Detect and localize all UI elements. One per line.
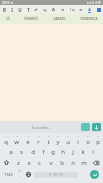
- button[interactable]: 2: [11, 135, 22, 146]
- button[interactable]: Space: [34, 172, 78, 178]
- staticText: n: [71, 159, 75, 167]
- button[interactable]: m: [78, 157, 89, 168]
- staticText: A: [88, 7, 91, 12]
- button[interactable]: U: [16, 5, 24, 14]
- staticText: l: [92, 148, 94, 156]
- button[interactable]: Comma: [15, 168, 23, 181]
- button[interactable]: c: [34, 157, 45, 168]
- staticText: v: [49, 159, 53, 167]
- button[interactable]: VENERDÌ: [16, 14, 45, 24]
- button[interactable]: I: [8, 5, 16, 14]
- button[interactable]: 6: [53, 135, 63, 146]
- button[interactable]: Send: [92, 123, 101, 131]
- button[interactable]: f: [38, 146, 48, 157]
- staticText: u: [66, 138, 70, 146]
- button[interactable]: 9: [83, 135, 93, 146]
- button[interactable]: DÌ: [0, 14, 16, 24]
- staticText: In ascolto...: [32, 125, 51, 130]
- button[interactable]: 7: [63, 135, 73, 146]
- staticText: IT • EN • DE: [49, 173, 63, 177]
- button[interactable]: v: [45, 157, 56, 168]
- button[interactable]: s: [16, 146, 27, 157]
- staticText: 2: [16, 135, 18, 138]
- button[interactable]: Microphone: [81, 123, 90, 131]
- button[interactable]: z: [13, 157, 23, 168]
- staticText: U: [18, 7, 22, 13]
- staticText: x₂: [43, 7, 47, 12]
- staticText: d: [31, 148, 35, 156]
- button[interactable]: ⋮≡: [67, 5, 76, 14]
- staticText: k: [81, 148, 85, 156]
- button[interactable]: x₂: [40, 5, 49, 14]
- button[interactable]: n: [67, 157, 78, 168]
- button[interactable]: x: [23, 157, 34, 168]
- button[interactable]: b: [56, 157, 67, 168]
- button[interactable]: a: [5, 146, 16, 157]
- staticText: .: [82, 172, 84, 178]
- staticText: DÌ: [6, 17, 10, 21]
- staticText: 6: [57, 135, 59, 138]
- staticText: w: [14, 138, 19, 146]
- staticText: o: [86, 138, 90, 146]
- button[interactable]: Highlight: [94, 5, 103, 14]
- staticText: ⋮≡: [69, 8, 75, 12]
- button[interactable]: 0: [93, 135, 103, 146]
- staticText: i: [77, 138, 79, 146]
- staticText: 08:19: [2, 1, 10, 5]
- staticText: m: [81, 159, 87, 167]
- button[interactable]: DOMENICA: [74, 14, 103, 24]
- button[interactable]: 5: [43, 135, 53, 146]
- button[interactable]: Text color: [85, 5, 94, 14]
- staticText: SABATO: [53, 17, 66, 21]
- staticText: 0: [97, 135, 99, 138]
- staticText: ,: [19, 173, 21, 179]
- button[interactable]: 3: [22, 135, 33, 146]
- button[interactable]: k: [78, 146, 88, 157]
- button[interactable]: B: [0, 5, 8, 14]
- staticText: g: [51, 148, 55, 156]
- button[interactable]: SABATO: [45, 14, 74, 24]
- button[interactable]: d: [27, 146, 38, 157]
- button[interactable]: Backspace: [89, 157, 103, 168]
- staticText: p: [96, 138, 100, 146]
- button[interactable]: Shift: [0, 157, 13, 168]
- button[interactable]: ≡: [58, 5, 67, 14]
- staticText: ?123: [4, 172, 13, 177]
- staticText: I: [11, 7, 13, 13]
- button[interactable]: In ascolto...: [2, 123, 81, 131]
- staticText: c: [38, 159, 41, 167]
- button[interactable]: ?123: [1, 168, 15, 181]
- staticText: q: [4, 138, 8, 146]
- button[interactable]: A: [49, 5, 58, 14]
- button[interactable]: l: [88, 146, 98, 157]
- staticText: s: [20, 148, 23, 156]
- staticText: 4: [38, 135, 40, 138]
- staticText: e: [26, 138, 30, 146]
- button[interactable]: g: [48, 146, 58, 157]
- staticText: DOMENICA: [80, 17, 98, 21]
- button[interactable]: j: [68, 146, 78, 157]
- staticText: 1: [5, 135, 7, 138]
- staticText: 7: [67, 135, 69, 138]
- staticText: A: [52, 7, 55, 13]
- staticText: y: [56, 138, 60, 146]
- button[interactable]: h: [58, 146, 68, 157]
- button[interactable]: ≡: [76, 5, 85, 14]
- staticText: 3: [27, 135, 29, 138]
- button[interactable]: Change language: [23, 168, 33, 181]
- button[interactable]: x²: [32, 5, 40, 14]
- button[interactable]: 8: [73, 135, 83, 146]
- staticText: ☺: [18, 170, 21, 173]
- button[interactable]: Enter: [87, 168, 102, 181]
- staticText: x: [27, 159, 31, 167]
- staticText: x²: [34, 7, 38, 12]
- staticText: t: [47, 138, 50, 146]
- button[interactable]: 1: [0, 135, 11, 146]
- staticText: ≡: [61, 8, 65, 12]
- button[interactable]: 4: [33, 135, 43, 146]
- staticText: ≡: [79, 8, 83, 12]
- button[interactable]: T: [24, 5, 32, 14]
- staticText: r: [37, 138, 40, 146]
- staticText: VENERDÌ: [24, 17, 38, 21]
